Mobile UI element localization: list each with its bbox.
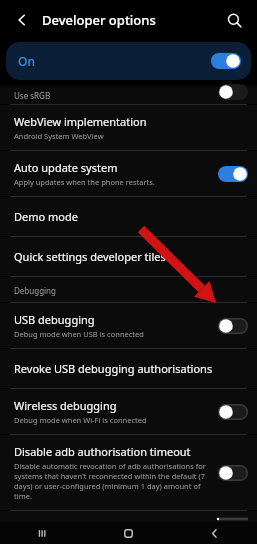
button[interactable]: Demo mode <box>0 197 257 236</box>
staticText: Debugging <box>14 285 56 296</box>
button[interactable]: 3GPP AT commands <box>0 511 257 522</box>
button[interactable]: Quick settings developer tiles <box>0 237 257 276</box>
button[interactable]: USB debugging <box>0 303 257 348</box>
button[interactable]: Search <box>221 7 247 33</box>
staticText: Disable automatic revocation of adb auth… <box>14 461 210 501</box>
staticText: Quick settings developer tiles <box>14 249 166 264</box>
button[interactable]: Revoke USB debugging authorisations <box>0 349 257 388</box>
staticText: Apply updates when the phone restarts. <box>14 177 155 187</box>
staticText: Auto update system <box>14 160 118 175</box>
staticText: Wireless debugging <box>14 398 117 413</box>
button[interactable]: Wireless debugging <box>0 389 257 434</box>
staticText: Demo mode <box>14 209 78 224</box>
button[interactable]: Home <box>85 522 171 544</box>
staticText: Disable adb authorisation timeout <box>14 444 191 459</box>
button[interactable]: Auto update system <box>0 151 257 196</box>
staticText: Developer options <box>42 11 221 29</box>
button[interactable]: Recents <box>0 522 85 544</box>
button[interactable]: WebView implementation <box>0 105 257 150</box>
button[interactable]: On <box>6 42 251 80</box>
button[interactable]: Disable adb authorisation timeout <box>0 435 257 510</box>
staticText: Revoke USB debugging authorisations <box>14 361 213 376</box>
button[interactable]: Use sRGB <box>0 86 257 104</box>
staticText: Debug mode when Wi-Fi is connected <box>14 415 147 425</box>
staticText: On <box>18 53 211 69</box>
staticText: Android System WebView <box>14 131 104 141</box>
staticText: USB debugging <box>14 312 95 327</box>
button[interactable]: Back <box>171 522 257 544</box>
button[interactable]: Back <box>10 8 34 32</box>
staticText: WebView implementation <box>14 114 147 129</box>
staticText: Debug mode when USB is connected <box>14 329 144 339</box>
staticText: Use sRGB <box>14 90 210 101</box>
